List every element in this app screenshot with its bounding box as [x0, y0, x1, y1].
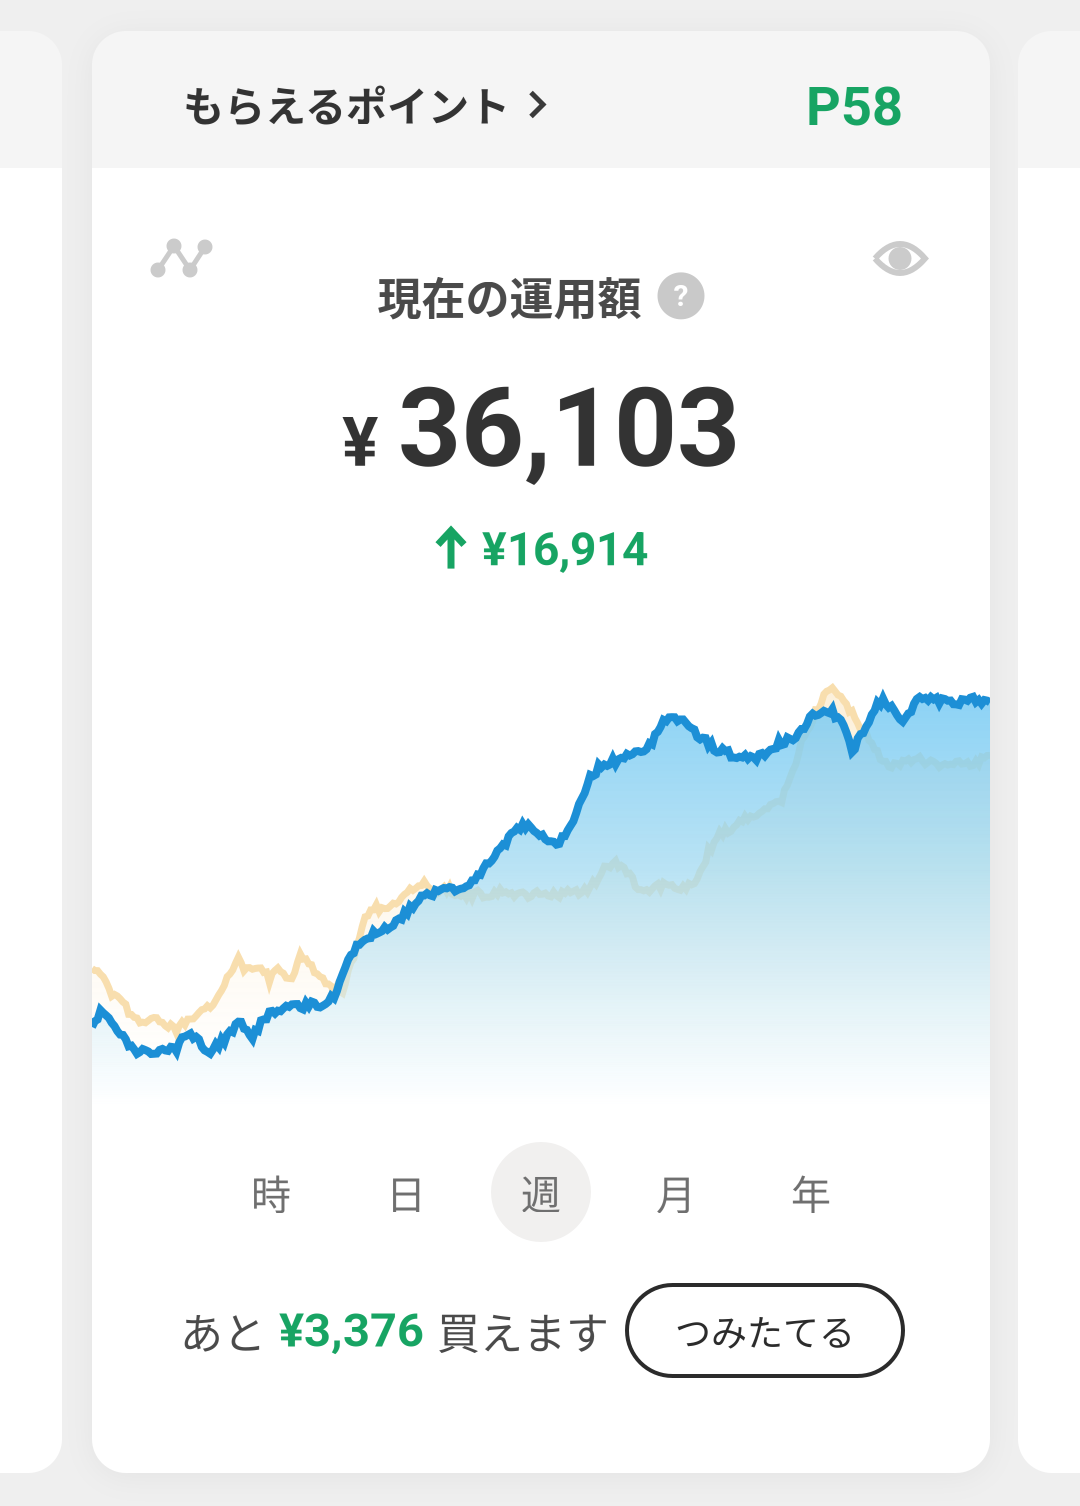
- staticText: 月: [656, 1163, 696, 1221]
- button[interactable]: What is this: [657, 272, 704, 319]
- staticText: 時: [251, 1163, 291, 1221]
- staticText: 週: [521, 1163, 561, 1221]
- button[interactable]: つみたてる: [627, 1285, 903, 1376]
- staticText: P58: [806, 75, 903, 138]
- staticText: 36,103: [398, 364, 740, 493]
- staticText: もらえるポイント: [183, 74, 510, 133]
- button[interactable]: Hide balance: [872, 239, 928, 277]
- button[interactable]: もらえるポイント: [92, 31, 990, 168]
- staticText: つみたてる: [675, 1304, 855, 1356]
- staticText: 年: [791, 1163, 831, 1221]
- staticText: ¥3,376: [279, 1303, 424, 1358]
- button[interactable]: 年: [761, 1142, 861, 1242]
- button[interactable]: 週: [491, 1142, 591, 1242]
- button[interactable]: 時: [221, 1142, 321, 1242]
- staticText: 日: [386, 1163, 426, 1221]
- staticText: 買えます: [437, 1299, 609, 1362]
- button[interactable]: Performance: [150, 239, 213, 278]
- staticText: ¥16,914: [482, 523, 648, 576]
- staticText: ?: [673, 278, 688, 313]
- staticText: 現在の運用額: [377, 264, 641, 328]
- staticText: ¥: [342, 403, 378, 482]
- staticText: あと: [180, 1299, 266, 1362]
- button[interactable]: 月: [626, 1142, 726, 1242]
- button[interactable]: 日: [356, 1142, 456, 1242]
